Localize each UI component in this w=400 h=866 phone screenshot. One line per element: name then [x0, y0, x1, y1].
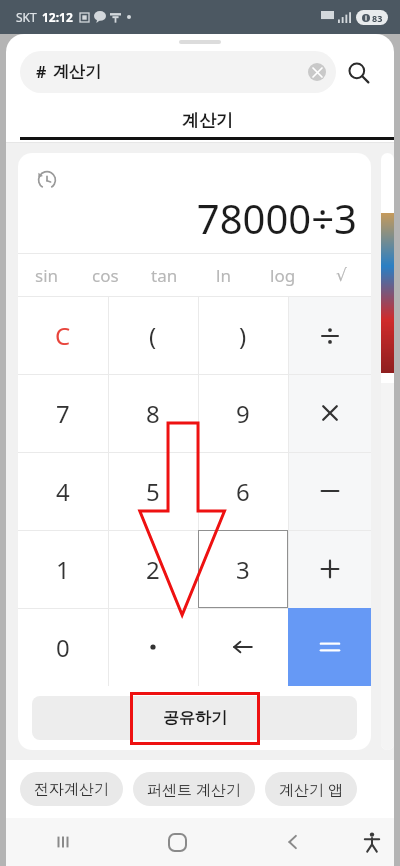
button[interactable]: √ — [312, 254, 371, 296]
button[interactable]: Backspace — [198, 608, 288, 686]
button[interactable]: Equals — [288, 608, 371, 686]
staticText: SKT — [16, 9, 37, 25]
button[interactable] — [288, 530, 371, 608]
staticText: C — [55, 319, 71, 352]
staticText: 5 — [146, 475, 160, 508]
button[interactable]: 1 — [18, 530, 108, 608]
button[interactable]: Accessibility — [350, 818, 394, 866]
button[interactable]: 계산기 앱 — [265, 772, 357, 806]
button[interactable]: sin — [18, 254, 76, 296]
staticText: 공유하기 — [163, 708, 227, 728]
staticText: sin — [35, 264, 59, 287]
button[interactable]: 전자계산기 — [20, 772, 123, 806]
staticText: 0 — [56, 631, 70, 664]
staticText: tan — [151, 264, 178, 287]
button[interactable] — [288, 374, 371, 452]
button[interactable]: # — [20, 51, 336, 93]
button[interactable]: 공유하기 — [32, 696, 357, 740]
button[interactable]: 5 — [108, 452, 198, 530]
staticText: 7 — [56, 397, 70, 430]
button[interactable]: ( — [108, 297, 198, 374]
button[interactable]: cos — [76, 254, 135, 296]
button[interactable]: 계산기 — [20, 99, 394, 143]
button[interactable]: ln — [194, 254, 253, 296]
staticText: 계산기 앱 — [279, 779, 343, 799]
button[interactable]: 6 — [198, 452, 288, 530]
staticText: 퍼센트 계산기 — [147, 779, 241, 799]
button[interactable]: 퍼센트 계산기 — [133, 772, 255, 806]
staticText: ( — [149, 319, 157, 352]
button[interactable]: 7 — [18, 374, 108, 452]
button[interactable] — [108, 608, 198, 686]
staticText: log — [270, 264, 296, 287]
staticText: 계산기 — [53, 62, 101, 82]
button[interactable]: Clear — [308, 63, 326, 81]
button[interactable]: 0 — [18, 608, 108, 686]
button[interactable]: 9 — [198, 374, 288, 452]
button[interactable]: log — [253, 254, 312, 296]
button[interactable]: C — [18, 297, 108, 374]
staticText: ln — [216, 264, 231, 287]
staticText: 전자계산기 — [34, 780, 109, 799]
button[interactable]: History — [30, 163, 64, 197]
staticText: 1 — [56, 553, 70, 586]
staticText: 8 — [146, 397, 160, 430]
staticText: 12:12 — [42, 9, 73, 25]
button[interactable]: 2 — [108, 530, 198, 608]
staticText: cos — [92, 264, 119, 287]
button[interactable]: Home — [120, 818, 235, 866]
staticText: ) — [239, 319, 247, 352]
staticText: # — [36, 61, 47, 83]
staticText: 6 — [236, 475, 250, 508]
button[interactable]: Recents — [6, 818, 120, 866]
staticText: 9 — [236, 397, 250, 430]
staticText: 2 — [146, 553, 160, 586]
staticText: 4 — [56, 475, 70, 508]
button[interactable]: 4 — [18, 452, 108, 530]
staticText: 78000÷3 — [196, 191, 357, 245]
button[interactable]: 8 — [108, 374, 198, 452]
button[interactable]: Search — [336, 51, 380, 93]
button[interactable] — [288, 452, 371, 530]
button[interactable] — [288, 297, 371, 374]
button[interactable]: Back — [235, 818, 350, 866]
staticText: 83 — [372, 12, 383, 24]
staticText: √ — [336, 265, 347, 285]
button[interactable]: 3 — [198, 530, 288, 608]
staticText: 계산기 — [182, 110, 233, 131]
staticText: 3 — [236, 553, 250, 586]
button[interactable]: tan — [135, 254, 194, 296]
button[interactable]: ) — [198, 297, 288, 374]
